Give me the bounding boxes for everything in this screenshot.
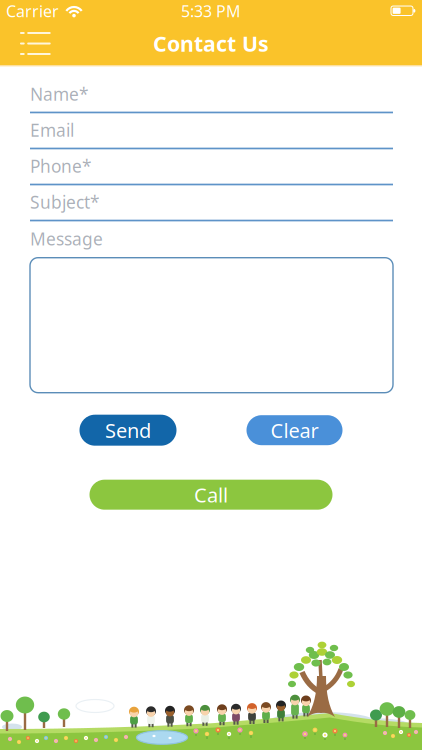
textField[interactable] (30, 310, 393, 340)
staticText: Email (30, 118, 74, 141)
staticText: Send (105, 417, 151, 443)
button[interactable]: Email (30, 118, 393, 149)
button[interactable]: Name* (30, 82, 393, 113)
button[interactable]: Menu (0, 32, 51, 55)
button[interactable]: Phone* (30, 154, 393, 185)
staticText: Carrier (6, 0, 59, 22)
button[interactable]: Call (89, 480, 332, 510)
staticText: Contact Us (153, 29, 269, 58)
staticText: 5:33 PM (181, 0, 241, 22)
button[interactable]: Clear (246, 415, 342, 445)
staticText: Name* (30, 82, 89, 105)
staticText: Call (194, 481, 228, 508)
button[interactable]: Send (79, 415, 176, 446)
staticText: Subject* (30, 191, 100, 214)
staticText: Message (30, 227, 103, 250)
button[interactable]: Subject* (30, 191, 393, 221)
staticText: Clear (270, 417, 318, 443)
staticText: Phone* (30, 154, 92, 177)
